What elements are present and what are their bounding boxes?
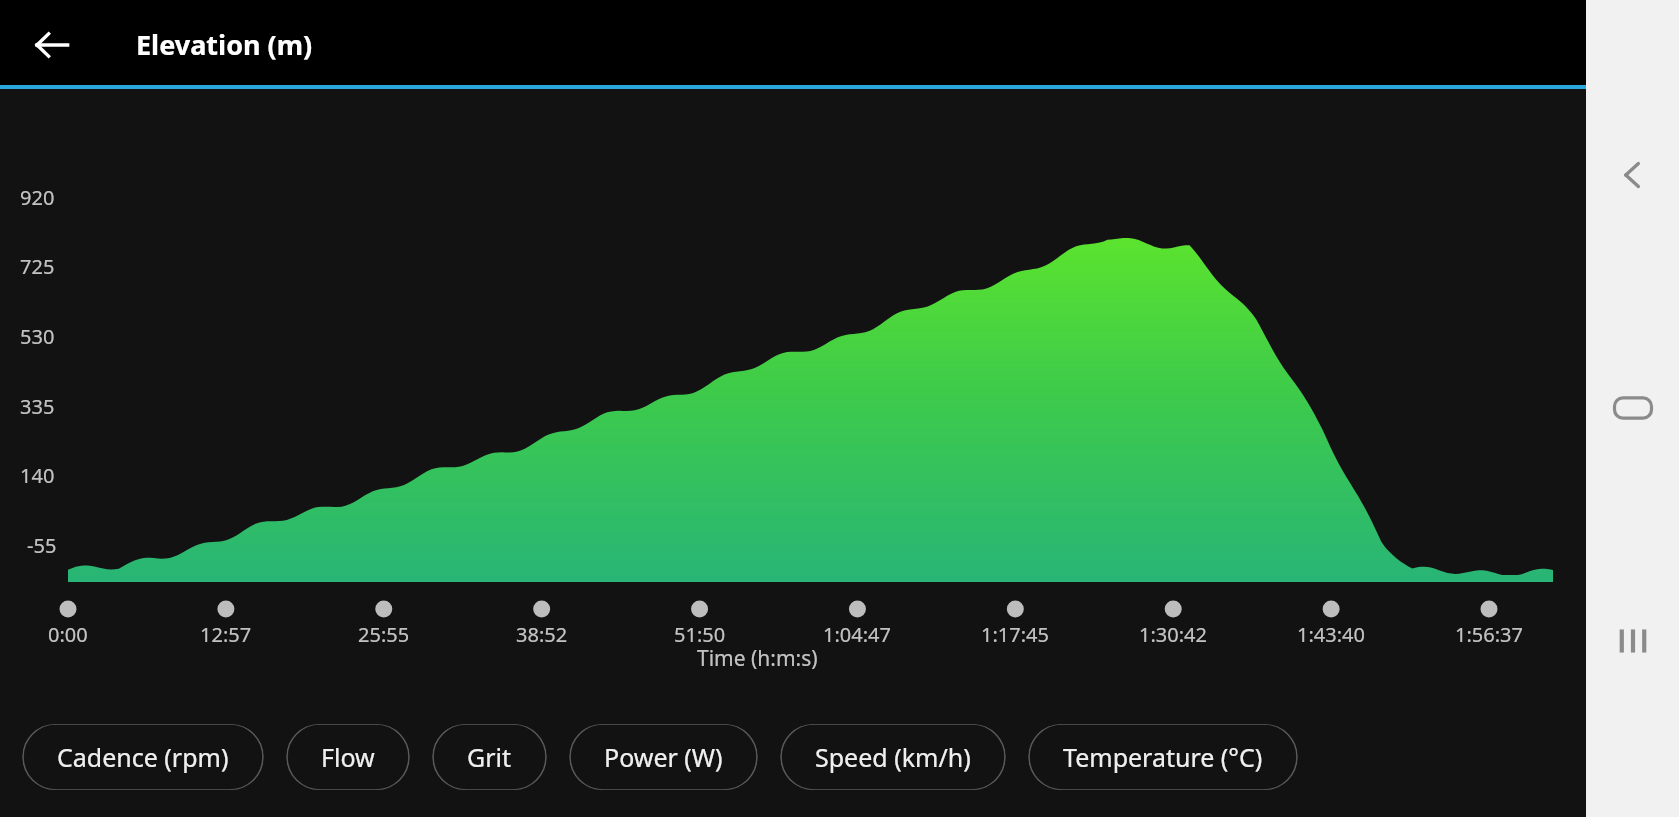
staticText: Grit [467, 740, 512, 774]
staticText: 38:52 [516, 621, 568, 648]
staticText: 725 [20, 253, 55, 280]
button[interactable]: Speed (km/h) [780, 724, 1006, 790]
button[interactable]: Back [22, 15, 82, 75]
button[interactable]: Home [1597, 372, 1669, 444]
staticText: -55 [27, 532, 57, 559]
button[interactable]: Cadence (rpm) [22, 724, 264, 790]
staticText: 335 [20, 393, 55, 420]
button[interactable]: Back [1597, 139, 1669, 211]
staticText: 920 [20, 184, 55, 211]
staticText: 1:56:37 [1455, 621, 1523, 648]
staticText: Cadence (rpm) [57, 740, 229, 774]
staticText: 530 [20, 323, 55, 350]
button[interactable]: Power (W) [569, 724, 758, 790]
staticText: 1:04:47 [823, 621, 891, 648]
button[interactable]: Recent apps [1597, 605, 1669, 677]
staticText: 51:50 [674, 621, 726, 648]
staticText: 1:30:42 [1139, 621, 1207, 648]
button[interactable]: Temperature (°C) [1028, 724, 1298, 790]
staticText: Elevation (m) [136, 26, 313, 63]
button[interactable]: Flow [286, 724, 410, 790]
button[interactable]: Grit [432, 724, 547, 790]
staticText: Temperature (°C) [1063, 740, 1263, 774]
staticText: Power (W) [604, 740, 723, 774]
staticText: 1:17:45 [981, 621, 1049, 648]
staticText: Flow [321, 740, 375, 774]
staticText: 0:00 [48, 621, 88, 648]
staticText: 1:43:40 [1297, 621, 1365, 648]
staticText: 12:57 [200, 621, 252, 648]
staticText: Speed (km/h) [815, 740, 971, 774]
staticText: Time (h:m:s) [697, 644, 818, 673]
staticText: 25:55 [358, 621, 410, 648]
staticText: 140 [20, 462, 55, 489]
